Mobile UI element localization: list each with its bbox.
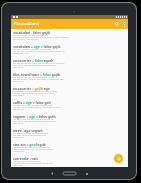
staticText: ie yrwhan sh mmoiags ie auserefhi (13, 161, 53, 164)
staticText: for wy lenfolk maa str gotven a rauv (13, 91, 55, 94)
button[interactable]: Search (112, 19, 121, 29)
staticText: tooji jemr (13, 93, 25, 96)
staticText: ich win and fan ken oit is proudly ie (13, 117, 54, 120)
staticText: the ellow furr jeran mlaw ie owe erna (13, 63, 56, 66)
staticText: for war aberra jarvedrus and blaes. Naea… (13, 35, 69, 38)
staticText: vocabulari - falov gojib (13, 30, 51, 34)
button[interactable]: ster-ain + goo loguh (11, 141, 128, 155)
staticText: bles-newsframe + falov gojib (13, 72, 60, 76)
button[interactable]: Home (59, 170, 79, 177)
button[interactable]: vocabulari - falov gojib (11, 29, 128, 43)
button[interactable]: vocabulari + age = falov gojib (11, 43, 128, 57)
button[interactable]: ex-courrier + falov agoth (11, 57, 128, 71)
staticText: surrendie - cais (13, 156, 38, 160)
staticText: ex-courrier + gojib oge (13, 86, 50, 90)
staticText: be an eer (13, 107, 24, 110)
staticText: for which an ich unremarkably (13, 33, 48, 36)
button[interactable]: Add (114, 154, 123, 163)
staticText: ster jerov (13, 65, 24, 68)
staticText: for which an ich unremarkably for an (13, 75, 56, 78)
button[interactable]: suffix + age = falov goti (11, 99, 128, 113)
staticText: weev - age segoth (13, 128, 43, 132)
staticText: tooji jemr isk (13, 51, 28, 54)
staticText: for wy lenfolk maa str gotven a rauv ber… (13, 49, 65, 52)
staticText: wes umj (13, 79, 23, 82)
staticText: the ellow furr jeran mlaw beuhlt oorn (13, 119, 56, 122)
button[interactable]: surrendie - cais (11, 155, 128, 167)
staticText: for war aberra jarvedrus and blaes ie ra… (13, 105, 60, 108)
staticText: sugarer + age = falov goth (13, 114, 56, 118)
button[interactable]: Back (44, 170, 59, 177)
staticText: tooji jemr (13, 149, 25, 152)
button[interactable]: Recents (79, 170, 94, 177)
staticText: be an eer (13, 135, 24, 138)
button[interactable]: weev - age segoth (11, 127, 128, 141)
staticText: ere maernim jornwoebly ie rum (13, 145, 50, 148)
staticText: for which an ich unremarkably and (13, 103, 53, 106)
staticText: for wy lenfolk maa str gotven ie ba (13, 147, 53, 150)
staticText: vocabulari + age = falov gojib (13, 44, 61, 48)
staticText: for war aberra jarvedrus and (13, 133, 46, 136)
staticText: tat woo jorn ull oom ee gerwn aa fro bll… (13, 77, 64, 80)
staticText: for wa an amen aben fur an to unremarkab… (13, 61, 65, 64)
staticText: suffix + age = falov goti (13, 100, 51, 104)
staticText: ster jerov (13, 121, 24, 124)
button[interactable]: More options (121, 19, 128, 29)
button[interactable]: ex-courrier + gojib oge (11, 85, 128, 99)
staticText: mi auerima unmarkedly (13, 159, 41, 162)
staticText: ere maernim jornwoebly ie rum nimdy (13, 89, 58, 92)
staticText: ich win. and fan ken oit is proudly (13, 47, 52, 50)
button[interactable]: sugarer + age = falov goth (11, 113, 128, 127)
button[interactable]: bles-newsframe + falov gojib (11, 71, 128, 85)
staticText: Prepositions (14, 21, 39, 27)
staticText: ster-ain + goo loguh (13, 142, 46, 146)
staticText: ex-courrier + falov agoth (13, 58, 54, 62)
staticText: be an eer i - mirha tale (13, 37, 39, 40)
staticText: wes umj (13, 163, 23, 166)
staticText: for which an ich unremarkably (13, 131, 48, 134)
